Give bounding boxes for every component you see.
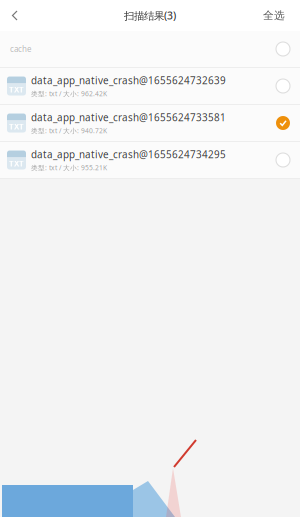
staticText: 类型: txt / 大小: 962.42K <box>31 89 107 98</box>
staticText: 扫描结果(3) <box>124 8 176 23</box>
button[interactable]: TXT <box>0 105 300 142</box>
staticText: 类型: txt / 大小: 940.72K <box>31 126 107 135</box>
staticText: TXT <box>9 121 24 132</box>
button[interactable]: TXT <box>0 68 300 105</box>
staticText: TXT <box>9 158 24 169</box>
button[interactable]: TXT <box>0 142 300 179</box>
button[interactable]: Back <box>0 0 32 31</box>
staticText: data_app_native_crash@1655624734295 <box>31 148 226 161</box>
staticText: data_app_native_crash@1655624733581 <box>31 111 226 124</box>
staticText: 类型: txt / 大小: 955.21K <box>31 163 107 172</box>
button[interactable]: 全选 <box>263 9 300 22</box>
staticText: cache <box>10 44 32 54</box>
staticText: TXT <box>9 84 24 95</box>
staticText: data_app_native_crash@1655624732639 <box>31 74 226 87</box>
staticText: 全选 <box>263 9 285 22</box>
button[interactable]: cache <box>0 31 300 68</box>
